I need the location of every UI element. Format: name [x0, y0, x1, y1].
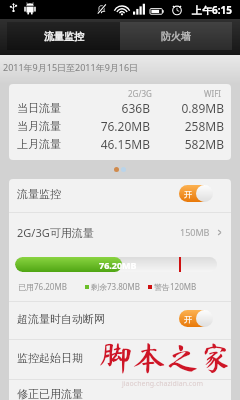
button[interactable]: 超流量时自动断网 — [9, 302, 231, 339]
button[interactable]: 修正已用流量 — [9, 380, 231, 400]
staticText: WIFI — [204, 88, 222, 99]
button[interactable]: 防火墙 — [120, 22, 232, 50]
staticText: 636B — [17, 100, 150, 116]
button[interactable]: 流量监控 — [7, 22, 120, 50]
staticText: 76.20MB — [17, 118, 150, 134]
staticText: 2G/3G可用流量 — [17, 225, 94, 240]
staticText: 监控起始日期 — [17, 351, 83, 365]
staticText: 开 — [184, 314, 192, 324]
staticText: 46.15MB — [17, 136, 150, 152]
staticText: 脚本之家 — [99, 341, 234, 374]
staticText: 2G/3G — [128, 88, 152, 99]
staticText: 0.89MB — [17, 100, 224, 116]
staticText: 剩余73.80MB — [91, 281, 140, 292]
staticText: 当月流量 — [17, 119, 61, 133]
staticText: 防火墙 — [161, 30, 191, 43]
staticText: jiaocheng.chazidian.com — [122, 379, 204, 389]
button[interactable]: 2G/3G可用流量 — [9, 213, 231, 251]
staticText: 流量监控 — [44, 30, 84, 43]
button[interactable]: 流量监控 — [9, 179, 231, 212]
staticText: 258MB — [17, 118, 224, 134]
button[interactable]: 监控起始日期 — [9, 340, 231, 379]
staticText: 2011年9月15日至2011年9月16日 — [3, 61, 139, 73]
staticText: 超流量时自动断网 — [17, 312, 105, 326]
staticText: 582MB — [17, 136, 224, 152]
staticText: 当日流量 — [17, 101, 61, 115]
staticText: 76.20MB — [99, 259, 137, 271]
staticText: 流量监控 — [17, 187, 61, 201]
staticText: 开 — [184, 189, 192, 199]
staticText: 已用76.20MB — [18, 281, 67, 292]
staticText: 上月流量 — [17, 137, 61, 151]
staticText: 警告120MB — [154, 281, 197, 292]
staticText: 150MB — [180, 226, 210, 238]
staticText: 修正已用流量 — [17, 387, 83, 400]
staticText: 上午6:15 — [192, 3, 232, 17]
